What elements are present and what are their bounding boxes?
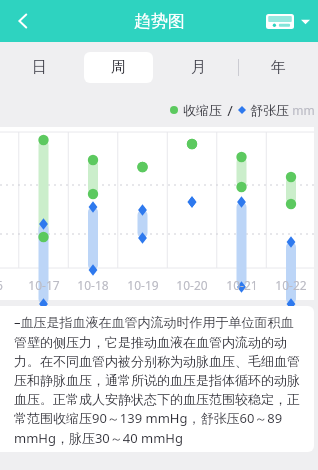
button[interactable]: Select device xyxy=(262,8,314,35)
button[interactable]: 年 xyxy=(238,52,318,83)
staticText: 趋势图 xyxy=(134,11,185,32)
staticText: 10-20 xyxy=(176,277,208,293)
button[interactable]: 日 xyxy=(0,52,79,83)
staticText: 10-18 xyxy=(77,277,109,293)
staticText: mm xyxy=(292,102,315,118)
staticText: / xyxy=(227,100,233,120)
staticText: 收缩压 xyxy=(183,102,222,118)
staticText: 年 xyxy=(271,58,286,77)
staticText: 舒张压 xyxy=(250,102,289,118)
staticText: –血压是指血液在血管内流动时作用于单位面积血管壁的侧压力，它是推动血液在血管内流… xyxy=(14,313,304,447)
staticText: 10-17 xyxy=(28,277,60,293)
button[interactable]: 周 xyxy=(84,52,153,83)
staticText: 10-19 xyxy=(127,277,159,293)
staticText: 日 xyxy=(32,58,47,77)
staticText: 10-21 xyxy=(226,277,258,293)
staticText: 月 xyxy=(191,58,206,77)
button[interactable]: Back xyxy=(4,2,42,40)
button[interactable]: 月 xyxy=(158,52,238,83)
staticText: 周 xyxy=(111,58,126,77)
staticText: -16 xyxy=(0,277,3,293)
staticText: 10-22 xyxy=(275,277,307,293)
